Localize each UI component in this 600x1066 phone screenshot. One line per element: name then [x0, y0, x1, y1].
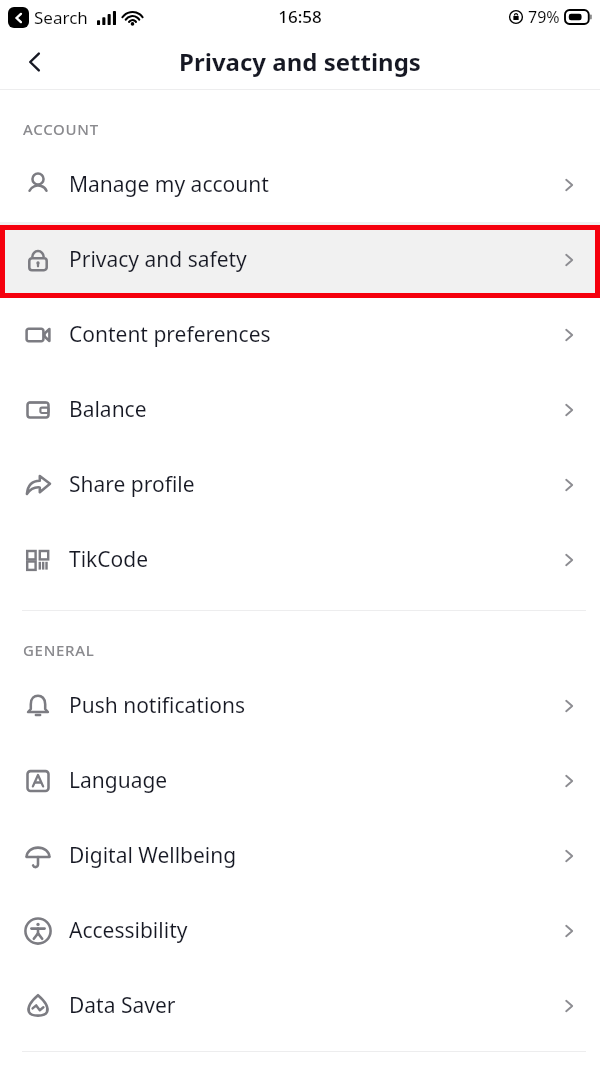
- button[interactable]: Content preferences: [0, 297, 600, 372]
- button[interactable]: Data Saver: [0, 968, 600, 1043]
- staticText: Share profile: [69, 470, 195, 499]
- staticText: Language: [69, 766, 168, 795]
- staticText: Push notifications: [69, 691, 246, 720]
- staticText: GENERAL: [23, 640, 95, 660]
- staticText: Data Saver: [69, 991, 176, 1020]
- button[interactable]: Digital Wellbeing: [0, 818, 600, 893]
- staticText: Accessibility: [69, 916, 188, 945]
- staticText: 16:58: [278, 5, 322, 28]
- button[interactable]: Accessibility: [0, 893, 600, 968]
- button[interactable]: Share profile: [0, 447, 600, 522]
- button[interactable]: Push notifications: [0, 668, 600, 743]
- staticText: Privacy and safety: [69, 245, 247, 274]
- staticText: Manage my account: [69, 170, 269, 199]
- button[interactable]: Language: [0, 743, 600, 818]
- staticText: Digital Wellbeing: [69, 841, 237, 870]
- button[interactable]: Privacy and safety: [0, 222, 600, 297]
- staticText: Balance: [69, 395, 147, 424]
- button[interactable]: Back: [12, 39, 58, 85]
- staticText: Search: [34, 6, 88, 29]
- button[interactable]: Manage my account: [0, 147, 600, 222]
- staticText: 79%: [528, 6, 560, 28]
- button[interactable]: TikCode: [0, 522, 600, 597]
- staticText: TikCode: [69, 545, 149, 574]
- staticText: Content preferences: [69, 320, 271, 349]
- button[interactable]: Balance: [0, 372, 600, 447]
- staticText: Privacy and settings: [179, 45, 421, 78]
- staticText: ACCOUNT: [23, 119, 99, 139]
